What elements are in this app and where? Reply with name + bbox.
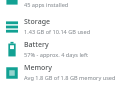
- button[interactable]: Memory: [0, 61, 132, 84]
- other: Memory: [0, 61, 24, 84]
- staticText: Avg 1.8 GB of 1.8 GB memory used: [24, 74, 116, 82]
- staticText: 45 apps installed: [24, 1, 69, 9]
- staticText: 57% - approx. 4 days left: [24, 51, 88, 59]
- other: Storage: [0, 15, 24, 38]
- button[interactable]: Storage: [0, 15, 132, 38]
- staticText: Memory: [24, 63, 53, 73]
- other: Apps: [0, 0, 24, 15]
- other: Battery: [0, 38, 24, 61]
- staticText: 1.43 GB of 10.14 GB used: [24, 28, 91, 36]
- button[interactable]: Battery: [0, 38, 132, 61]
- button[interactable]: Apps: [0, 0, 132, 15]
- staticText: Storage: [24, 17, 50, 27]
- staticText: Battery: [24, 40, 49, 50]
